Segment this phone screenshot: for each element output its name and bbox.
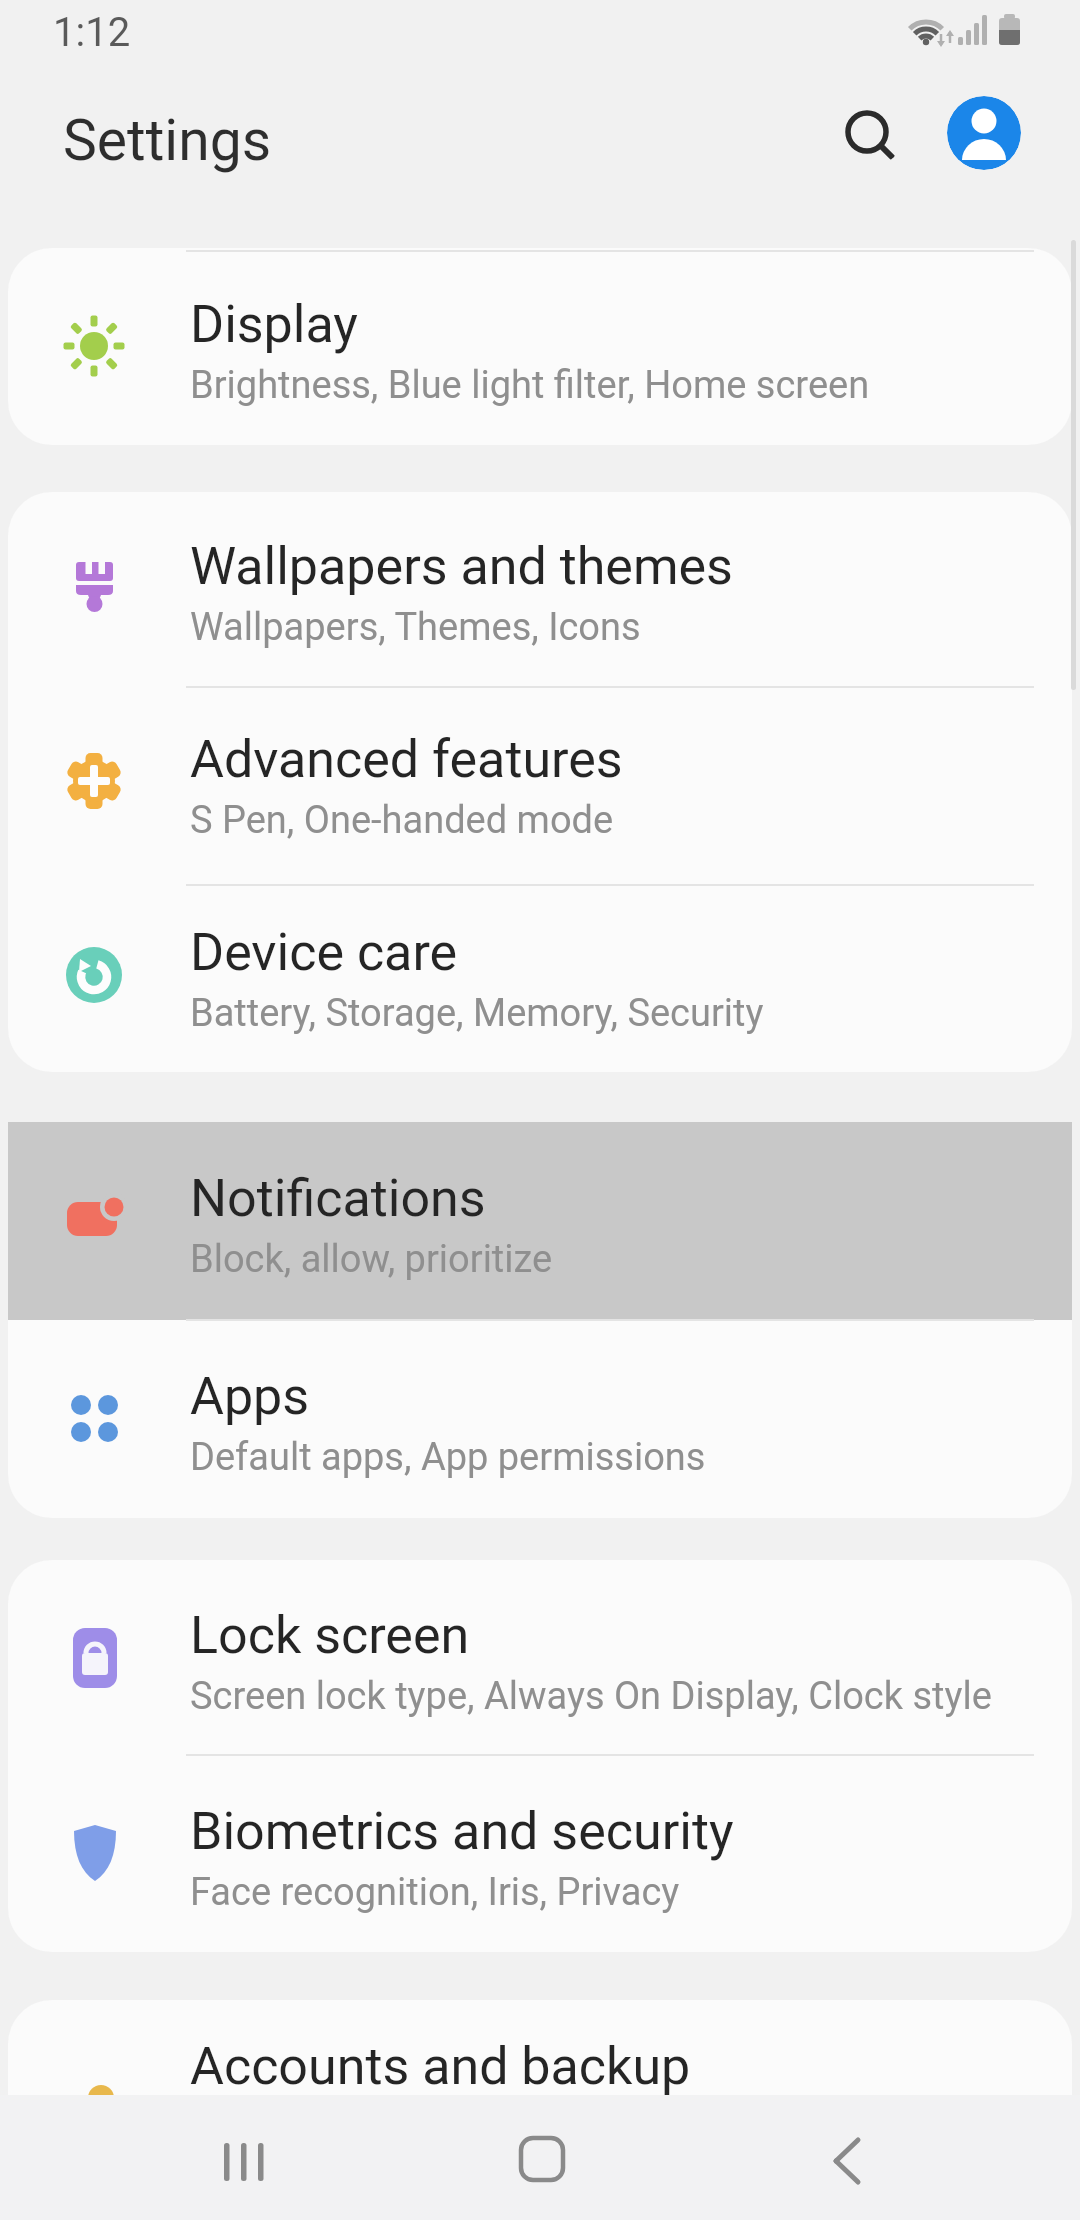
button[interactable]: Lock screen (8, 1560, 1072, 1756)
staticText: S Pen, One-handed mode (190, 798, 614, 843)
staticText: Settings (63, 107, 272, 174)
staticText: Display (190, 294, 358, 355)
button[interactable]: Advanced features (8, 685, 1072, 878)
button[interactable]: Apps (8, 1320, 1072, 1518)
button[interactable]: Notifications (8, 1122, 1072, 1320)
staticText: Notifications (190, 1168, 486, 1229)
button[interactable] (947, 96, 1021, 170)
staticText: Device care (190, 922, 458, 983)
staticText: 1:12 (53, 9, 131, 56)
staticText: Wallpapers and themes (190, 536, 733, 597)
staticText: Apps (190, 1366, 310, 1427)
staticText: Brightness, Blue light filter, Home scre… (190, 363, 870, 408)
staticText: Biometrics and security (190, 1801, 734, 1862)
button[interactable]: Biometrics and security (8, 1756, 1072, 1952)
staticText: Screen lock type, Always On Display, Clo… (190, 1674, 992, 1719)
staticText: Block, allow, prioritize (190, 1237, 553, 1282)
staticText: Lock screen (190, 1605, 470, 1666)
button[interactable] (184, 2095, 304, 2220)
staticText: Face recognition, Iris, Privacy (190, 1870, 680, 1915)
staticText: Advanced features (190, 729, 623, 790)
button[interactable]: Accounts and backup (8, 2000, 1072, 2220)
button[interactable]: Display (8, 248, 1072, 445)
button[interactable]: Wallpapers and themes (8, 492, 1072, 685)
staticText: Battery, Storage, Memory, Security (190, 991, 764, 1036)
button[interactable] (832, 96, 904, 168)
button[interactable]: Device care (8, 878, 1072, 1072)
staticText: Default apps, App permissions (190, 1435, 706, 1480)
button[interactable] (785, 2095, 905, 2220)
button[interactable] (482, 2095, 602, 2220)
staticText: Accounts and backup (190, 2036, 691, 2097)
staticText: Wallpapers, Themes, Icons (190, 605, 641, 650)
